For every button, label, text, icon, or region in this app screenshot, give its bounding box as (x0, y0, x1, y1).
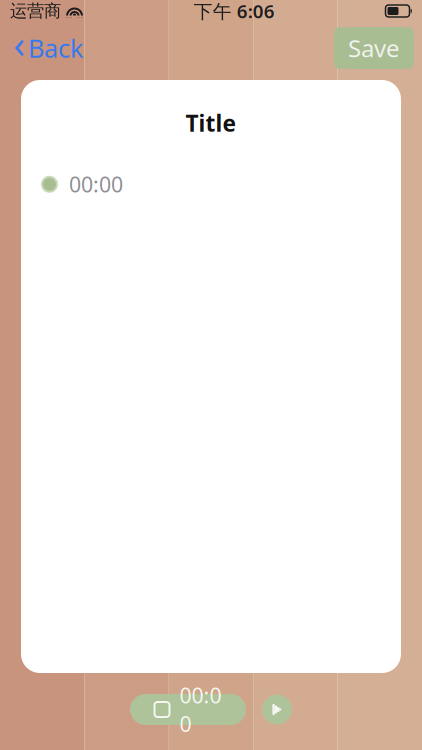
staticText: Back (28, 31, 84, 65)
button[interactable]: 00:00 (130, 694, 246, 725)
button[interactable]: Save (334, 27, 414, 69)
staticText: Title (185, 108, 236, 138)
staticText: 00:00 (179, 681, 221, 738)
staticText: 00:00 (69, 170, 123, 198)
button[interactable]: Play (262, 694, 292, 724)
button[interactable]: Back (8, 27, 90, 69)
staticText: Save (348, 32, 400, 64)
staticText: 运营商 (10, 0, 61, 22)
staticText: 下午 6:06 (194, 0, 275, 23)
